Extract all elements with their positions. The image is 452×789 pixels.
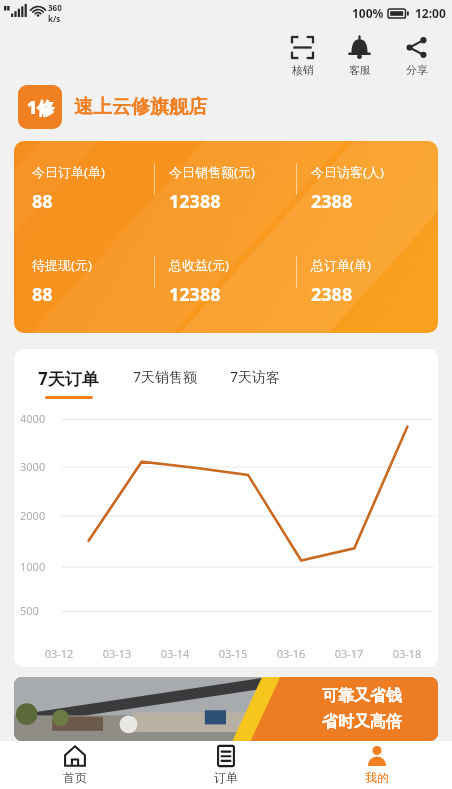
staticText: 今日订单(单) (32, 163, 105, 181)
staticText: 7天订单 (38, 367, 99, 390)
staticText: 7天访客 (230, 367, 281, 386)
button[interactable]: 7天销售额 (133, 367, 198, 395)
staticText: 今日销售额(元) (169, 163, 255, 181)
staticText: 7天销售额 (133, 367, 198, 386)
button[interactable]: 7天访客 (230, 367, 281, 395)
staticText: 100% (352, 5, 384, 21)
staticText: 2388 (311, 189, 353, 214)
button[interactable]: 客服 (346, 34, 373, 79)
staticText: 500 (20, 603, 39, 618)
staticText: 12388 (169, 189, 221, 214)
button[interactable]: 核销 (289, 34, 316, 79)
staticText: 速上云修旗舰店 (74, 95, 207, 119)
staticText: 首页 (63, 770, 87, 785)
staticText: 2388 (311, 282, 353, 307)
staticText: 我的 (365, 770, 389, 785)
button[interactable]: 首页 (0, 741, 150, 789)
button[interactable]: 1修 (18, 85, 452, 129)
staticText: 03-17 (320, 646, 378, 661)
staticText: 待提现(元) (32, 256, 92, 274)
staticText: 03-15 (204, 646, 262, 661)
staticText: 1修 (27, 96, 54, 119)
staticText: 12388 (169, 282, 221, 307)
staticText: 2000 (20, 508, 46, 523)
staticText: 3000 (20, 459, 46, 474)
button[interactable]: 分享 (403, 34, 430, 79)
staticText: 今日访客(人) (311, 163, 384, 181)
button[interactable]: 7天订单 (38, 367, 99, 399)
staticText: 客服 (349, 63, 371, 77)
staticText: 1000 (20, 559, 46, 574)
staticText: 03-16 (262, 646, 320, 661)
staticText: 总收益(元) (169, 256, 229, 274)
staticText: 12:00 (415, 5, 446, 21)
button[interactable]: 今日订单(单) (14, 141, 438, 333)
staticText: 4000 (20, 411, 46, 426)
staticText: 88 (32, 189, 53, 214)
staticText: 总订单(单) (311, 256, 371, 274)
staticText: 03-13 (88, 646, 146, 661)
staticText: 03-18 (378, 646, 436, 661)
staticText: 88 (32, 282, 53, 307)
button[interactable]: 我的 (301, 741, 452, 789)
staticText: 分享 (406, 63, 428, 77)
staticText: 核销 (292, 63, 314, 77)
button[interactable]: 订单 (150, 741, 301, 789)
staticText: 省时又高倍 (322, 712, 402, 732)
staticText: 03-14 (146, 646, 204, 661)
staticText: k/s (48, 13, 61, 24)
button[interactable]: 可靠又省钱 (14, 677, 438, 741)
staticText: 可靠又省钱 (322, 686, 402, 706)
staticText: 订单 (214, 770, 238, 785)
staticText: 03-12 (30, 646, 88, 661)
staticText: 360 (48, 2, 62, 13)
